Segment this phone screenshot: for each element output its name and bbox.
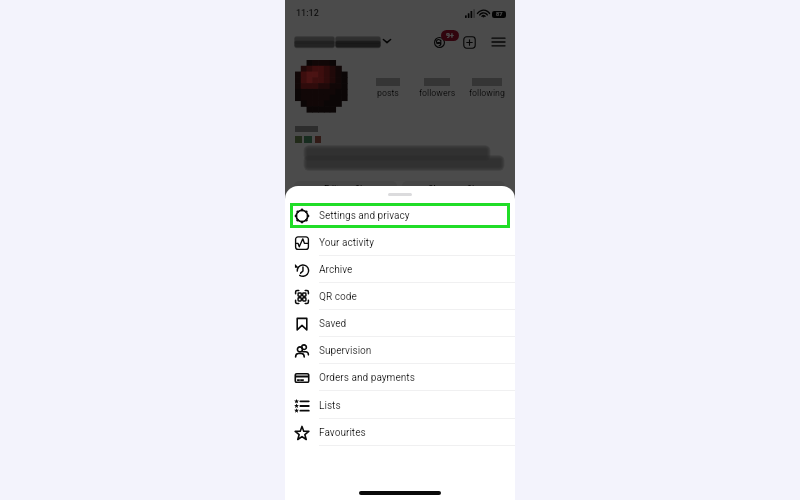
- button[interactable]: Supervision: [285, 337, 515, 364]
- staticText: Supervision: [319, 345, 372, 357]
- button[interactable]: Archive: [285, 256, 515, 283]
- button[interactable]: Threads: [434, 37, 445, 48]
- button[interactable]: Edit profile: [294, 181, 397, 197]
- staticText: Favourites: [319, 427, 366, 439]
- staticText: Saved: [319, 318, 347, 330]
- button[interactable]: Your activity: [285, 229, 515, 256]
- staticText: followers: [419, 88, 456, 98]
- staticText: Your activity: [319, 237, 374, 249]
- staticText: posts: [377, 88, 399, 98]
- staticText: following: [469, 88, 505, 98]
- staticText: Archive: [319, 264, 353, 276]
- staticText: Lists: [319, 400, 341, 412]
- button[interactable]: Menu: [492, 37, 505, 47]
- button[interactable]: Saved: [285, 310, 515, 337]
- staticText: 11:12: [296, 8, 319, 19]
- staticText: Share profile: [428, 184, 480, 195]
- button[interactable]: QR code: [285, 283, 515, 310]
- staticText: Edit profile: [324, 184, 368, 195]
- button[interactable]: Share profile: [402, 181, 505, 197]
- staticText: 87: [496, 11, 503, 18]
- button[interactable]: Orders and payments: [285, 364, 515, 391]
- button[interactable]: Favourites: [285, 419, 515, 446]
- button[interactable]: Lists: [285, 392, 515, 419]
- staticText: Orders and payments: [319, 372, 415, 384]
- staticText: Settings and privacy: [319, 210, 410, 222]
- button[interactable]: New post: [463, 36, 476, 49]
- button[interactable]: Settings and privacy: [290, 203, 510, 228]
- staticText: QR code: [319, 291, 357, 303]
- staticText: 9+: [446, 32, 454, 40]
